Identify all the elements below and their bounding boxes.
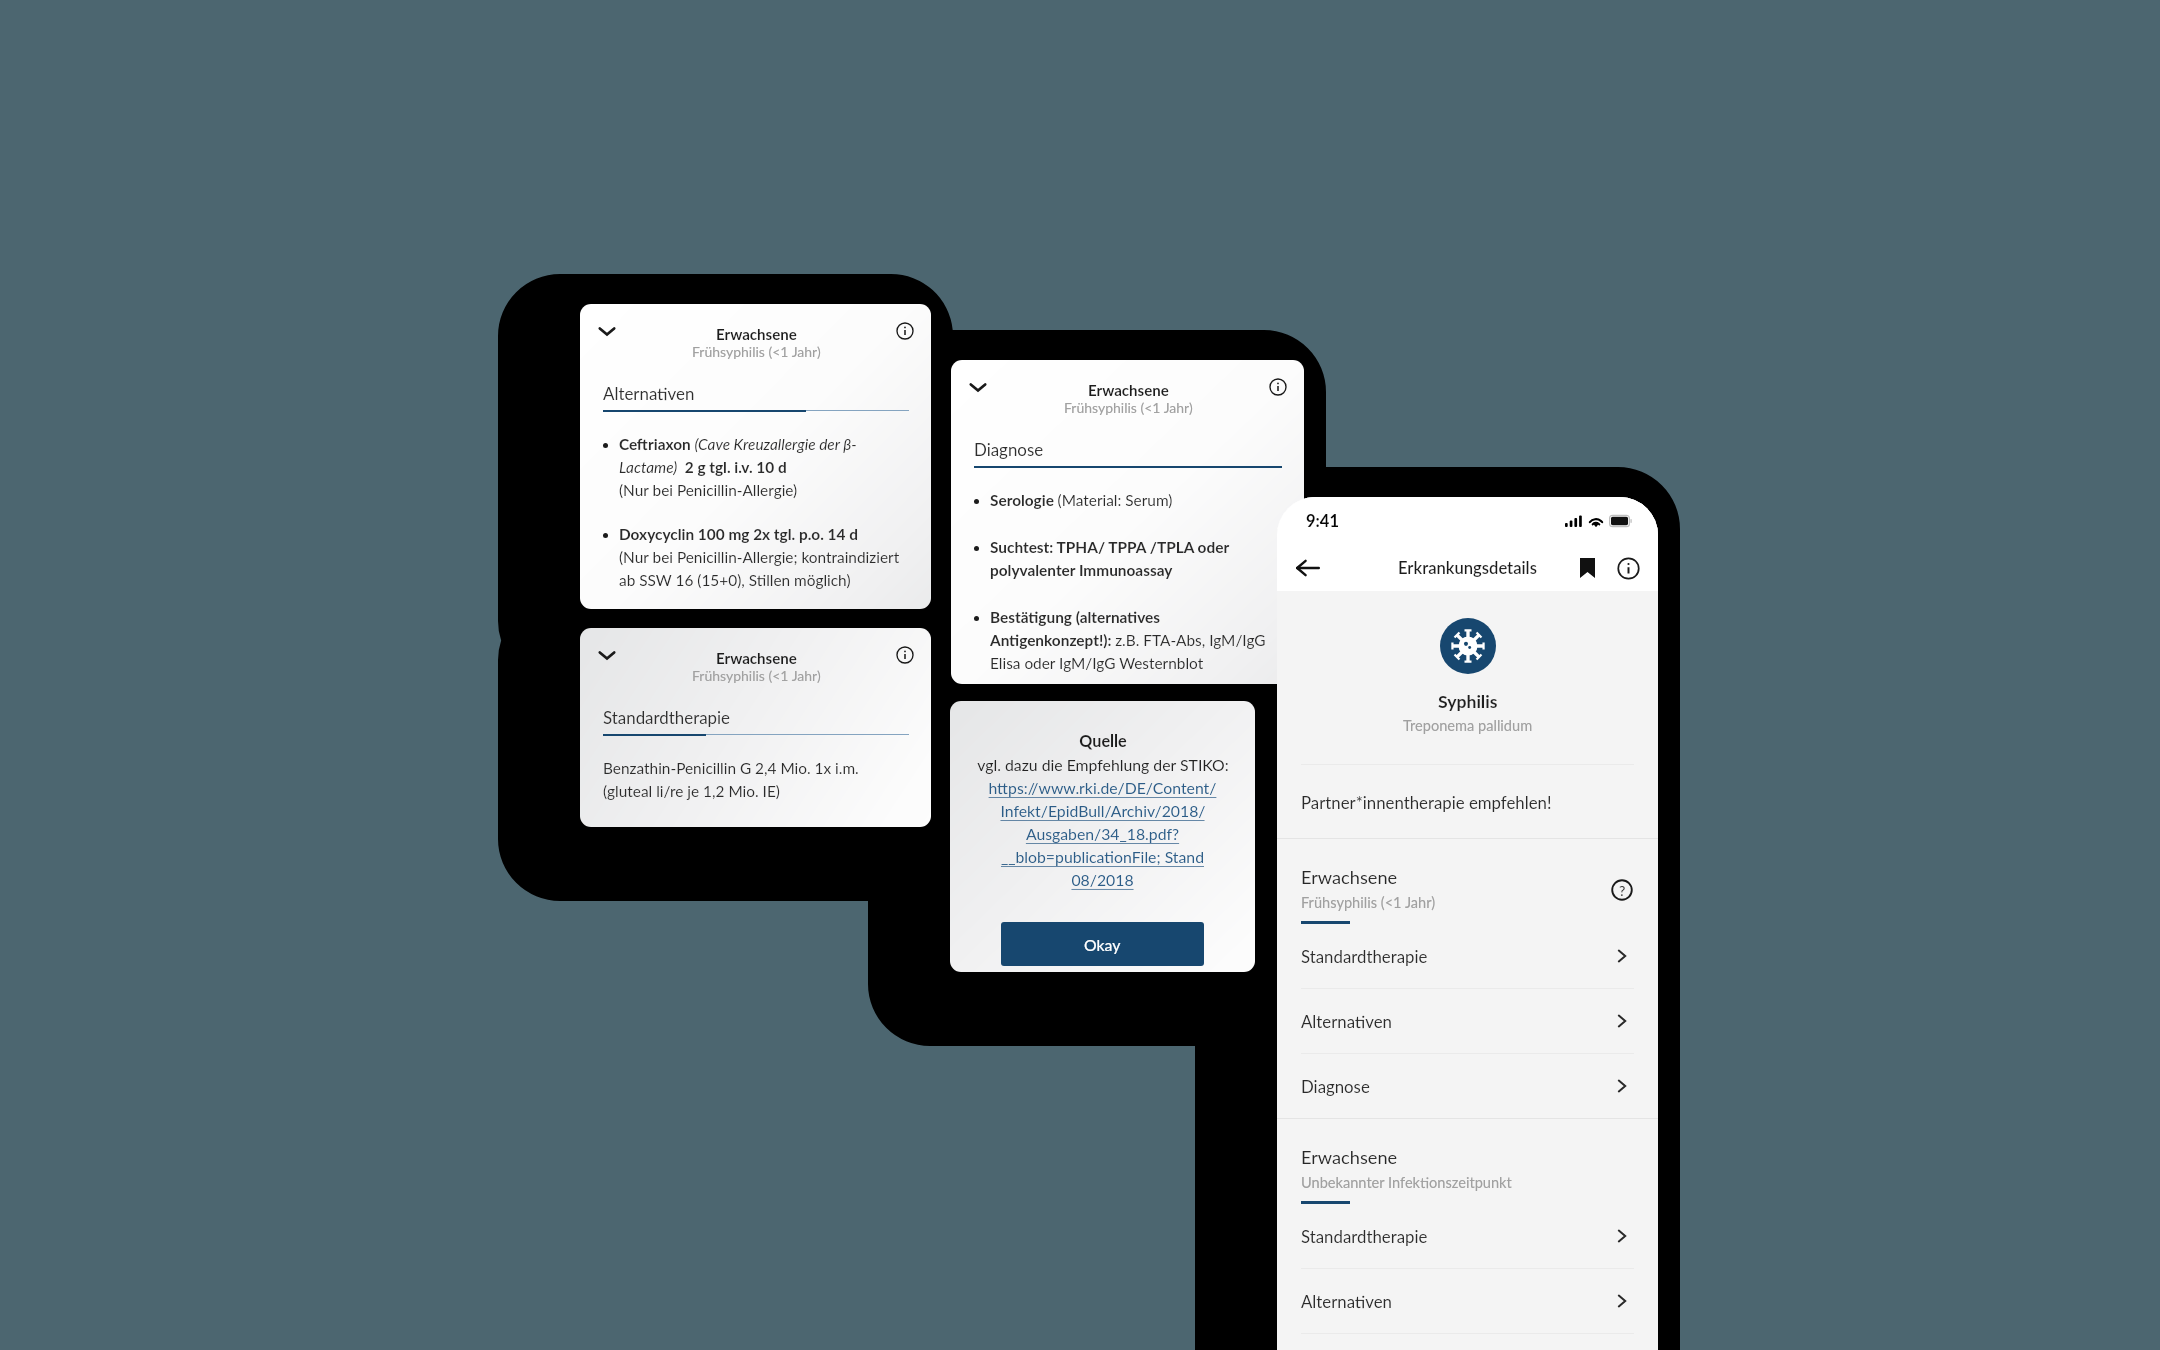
- button[interactable]: Alternativen: [1277, 1269, 1658, 1333]
- staticText: 9:41: [1306, 511, 1339, 531]
- staticText: Benzathin-Penicillin G 2,4 Mio. 1x i.m. …: [603, 759, 859, 800]
- staticText: Syphilis: [1438, 691, 1498, 712]
- staticText: Ceftriaxon (Cave Kreuzallergie der β-Lac…: [619, 435, 909, 499]
- staticText: Doxycyclin 100 mg 2x tgl. p.o. 14 d (Nur…: [619, 525, 909, 589]
- staticText: Bestätigung (alternatives Antigenkonzept…: [990, 608, 1282, 672]
- staticText: Partner*innentherapie empfehlen!: [1301, 792, 1552, 812]
- staticText: Treponema pallidum: [1403, 717, 1533, 735]
- staticText: Alternativen: [1301, 1291, 1392, 1311]
- staticText: Standardtherapie: [1301, 1226, 1428, 1246]
- staticText: Frühsyphilis (<1 Jahr): [1064, 399, 1193, 416]
- button[interactable]: Partner*innentherapie empfehlen!: [1277, 765, 1658, 838]
- button[interactable]: Collapse: [965, 374, 991, 400]
- button[interactable]: Diagnose: [1277, 1054, 1658, 1118]
- button[interactable]: Info: [892, 318, 918, 344]
- button[interactable]: https://www.rki.de/DE/Content/Infekt/Epi…: [968, 778, 1237, 889]
- staticText: Quelle: [1079, 731, 1127, 750]
- staticText: ?: [1619, 882, 1626, 899]
- staticText: Erwachsene: [1301, 866, 1398, 888]
- button[interactable]: Standardtherapie: [1277, 1204, 1658, 1268]
- staticText: Suchtest: TPHA/ TPPA /TPLA oder polyvale…: [990, 538, 1282, 579]
- staticText: Okay: [1084, 935, 1121, 954]
- staticText: Frühsyphilis (<1 Jahr): [692, 343, 821, 360]
- staticText: Erwachsene: [716, 649, 797, 667]
- staticText: Erwachsene: [1301, 1146, 1398, 1168]
- staticText: Frühsyphilis (<1 Jahr): [692, 667, 821, 684]
- staticText: Alternativen: [603, 383, 695, 403]
- staticText: Unbekannter Infektionszeitpunkt: [1301, 1174, 1512, 1192]
- button[interactable]: Collapse: [594, 642, 620, 668]
- staticText: Frühsyphilis (<1 Jahr): [1301, 894, 1436, 912]
- button[interactable]: Help: [1607, 875, 1636, 904]
- staticText: Diagnose: [1301, 1076, 1370, 1096]
- staticText: Standardtherapie: [1301, 946, 1428, 966]
- button[interactable]: Info: [1612, 552, 1644, 584]
- staticText: Erkrankungsdetails: [1398, 558, 1537, 578]
- staticText: vgl. dazu die Empfehlung der STIKO:: [977, 755, 1229, 774]
- button[interactable]: Collapse: [594, 318, 620, 344]
- button[interactable]: Standardtherapie: [1277, 924, 1658, 988]
- staticText: Diagnose: [974, 439, 1044, 459]
- staticText: Erwachsene: [716, 325, 797, 343]
- staticText: Erwachsene: [1088, 381, 1169, 399]
- button[interactable]: Okay: [1001, 922, 1204, 966]
- button[interactable]: Back: [1291, 551, 1325, 585]
- button[interactable]: Bookmark: [1571, 552, 1603, 584]
- staticText: Standardtherapie: [603, 707, 731, 727]
- staticText: Serologie (Material: Serum): [990, 491, 1173, 509]
- button[interactable]: Alternativen: [1277, 989, 1658, 1053]
- button[interactable]: Info: [892, 642, 918, 668]
- button[interactable]: Info: [1265, 374, 1291, 400]
- staticText: Alternativen: [1301, 1011, 1392, 1031]
